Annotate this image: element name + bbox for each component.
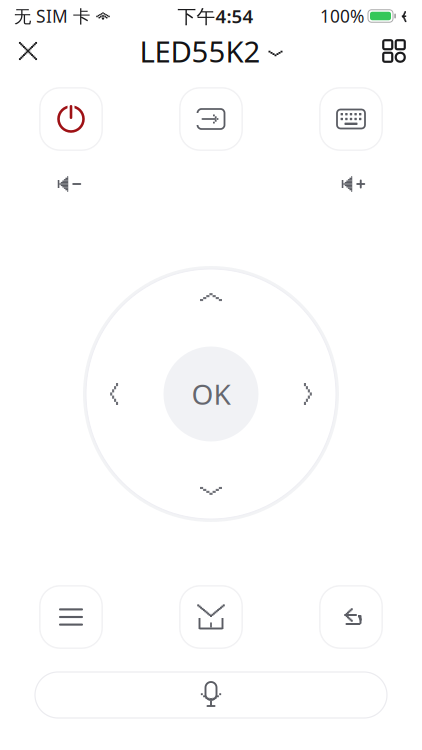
staticText: 下午4:54	[177, 4, 253, 28]
button[interactable]: OK	[163, 346, 258, 441]
button[interactable]: Right	[280, 366, 328, 422]
button[interactable]: Menu	[38, 584, 104, 650]
button[interactable]: Home	[178, 584, 244, 650]
button[interactable]: Back	[318, 584, 384, 650]
staticText: 无 SIM 卡	[14, 4, 90, 27]
button[interactable]: Volume down	[38, 164, 100, 204]
button[interactable]: Voice search	[0, 672, 422, 718]
button[interactable]: Volume up	[322, 164, 384, 204]
staticText: OK	[191, 375, 230, 413]
button[interactable]: Input source	[178, 86, 244, 152]
button[interactable]: Close	[6, 29, 50, 73]
staticText: LED55K2	[139, 31, 260, 70]
button[interactable]: Down	[183, 463, 239, 511]
button[interactable]: Power	[38, 86, 104, 152]
staticText: 100%	[320, 4, 364, 27]
button[interactable]: Left	[94, 366, 142, 422]
button[interactable]: Keyboard	[318, 86, 384, 152]
button[interactable]: Apps	[372, 29, 416, 73]
button[interactable]: Up	[183, 277, 239, 325]
button[interactable]: LED55K2	[129, 25, 292, 76]
